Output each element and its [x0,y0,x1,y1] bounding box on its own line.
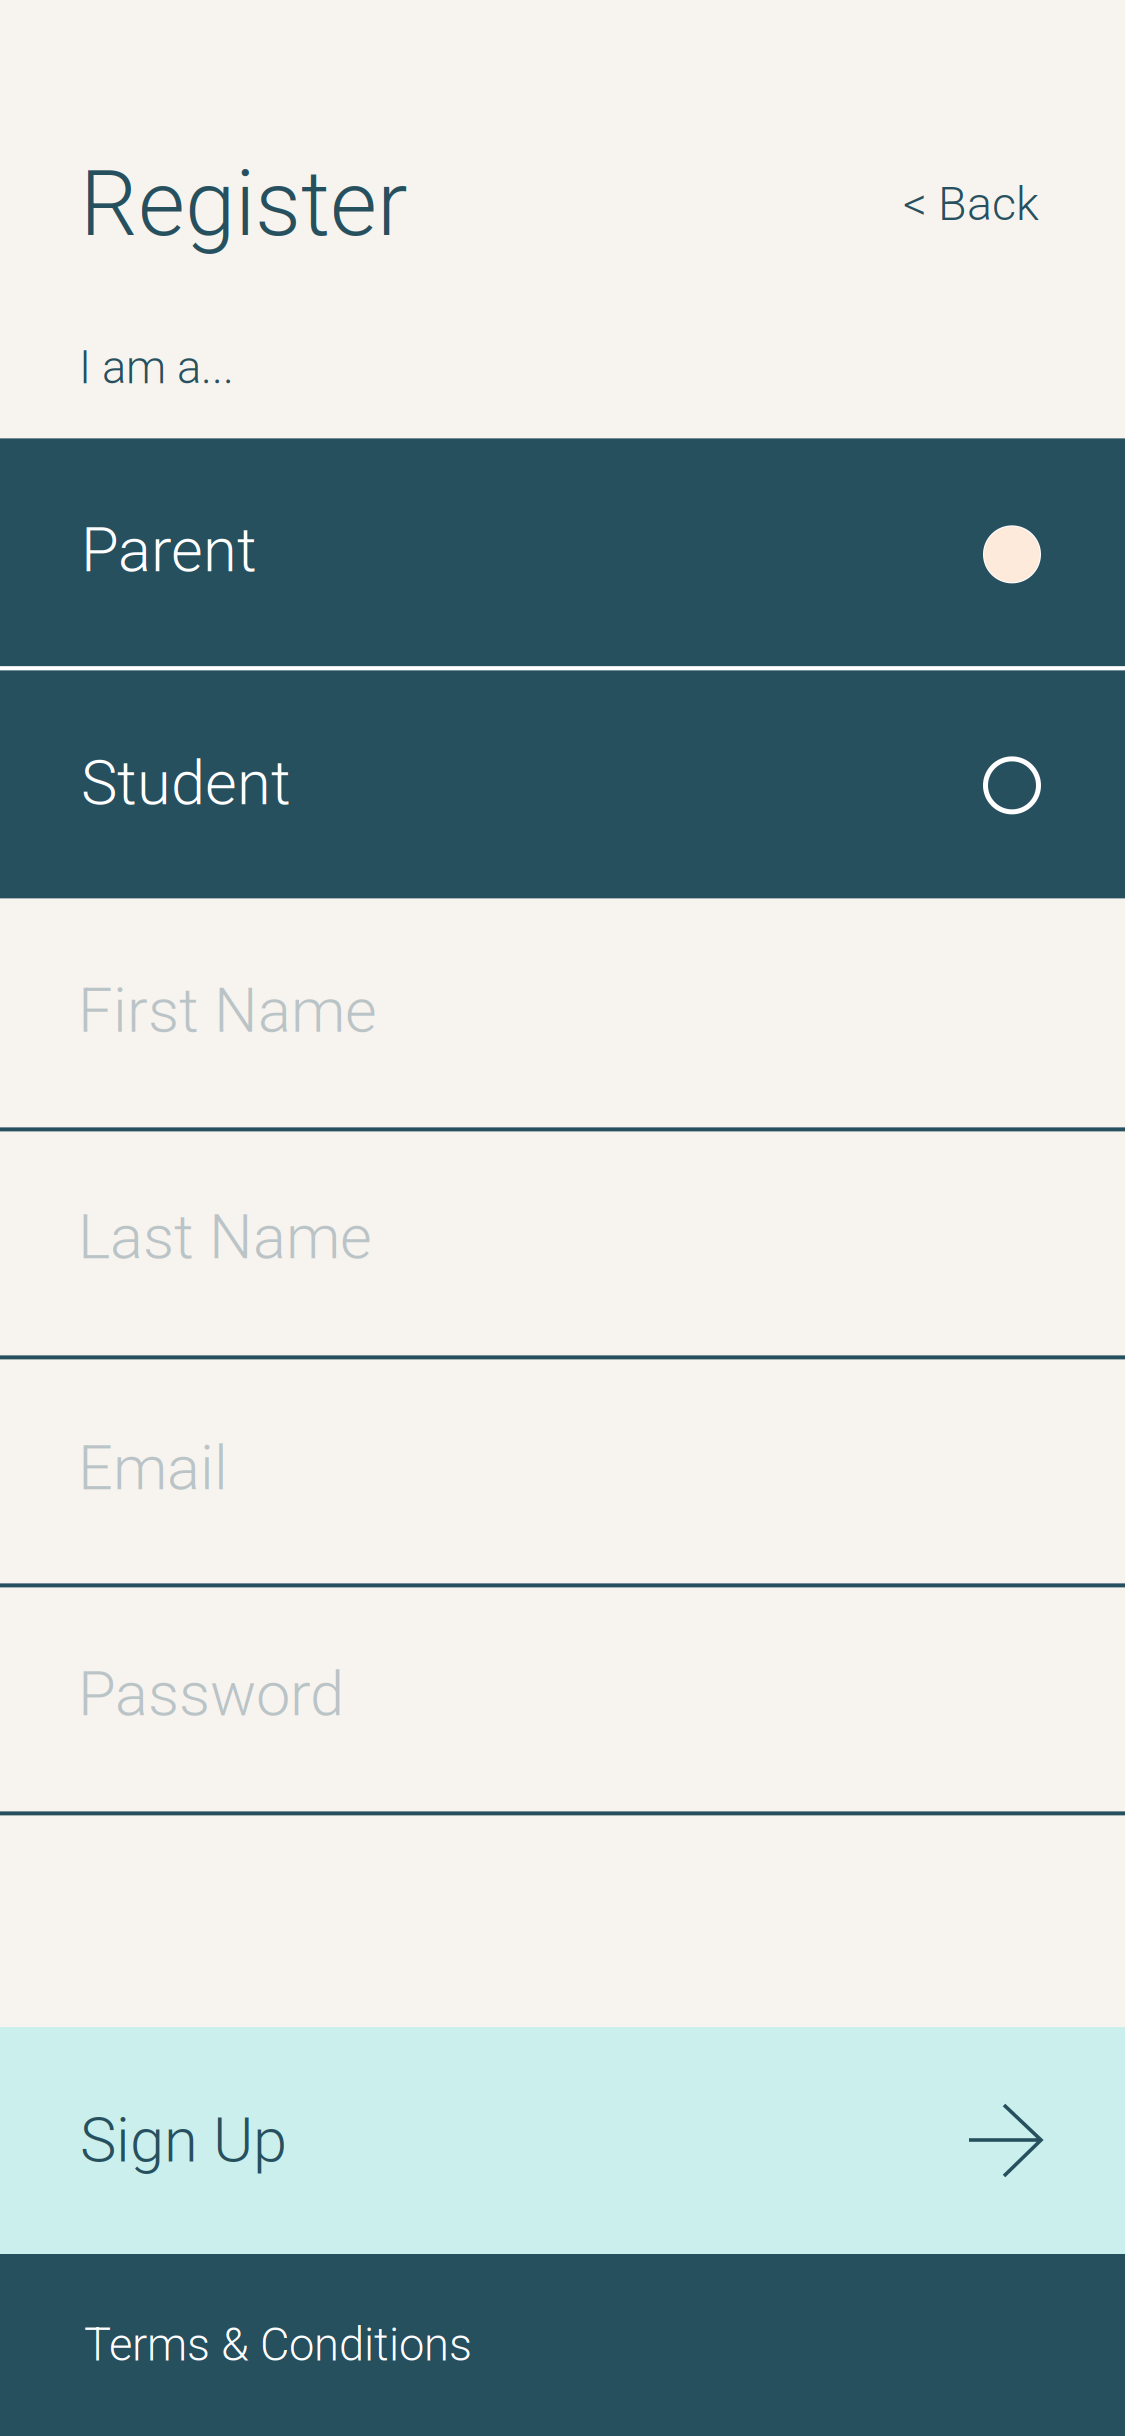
button[interactable]: Sign Up [0,2027,1125,2254]
staticText: First Name [78,975,377,1047]
button[interactable]: Password [0,1587,1125,1811]
staticText: Password [78,1658,344,1730]
button[interactable]: Email [0,1359,1125,1583]
button[interactable]: Last Name [0,1131,1125,1355]
staticText: Student [81,747,291,819]
button[interactable]: Parent [0,438,1125,666]
staticText: Sign Up [80,2105,287,2176]
staticText: Register [80,151,408,257]
staticText: Parent [81,514,257,586]
staticText: I am a... [79,341,234,394]
staticText: Email [78,1432,228,1504]
staticText: Terms & Conditions [84,2318,472,2371]
button[interactable]: Terms & Conditions [0,2254,1125,2436]
staticText: Last Name [78,1201,372,1273]
button[interactable]: < Back [903,177,1039,231]
button[interactable]: Student [0,670,1125,898]
staticText: < Back [903,177,1039,231]
button[interactable]: First Name [0,898,1125,1127]
